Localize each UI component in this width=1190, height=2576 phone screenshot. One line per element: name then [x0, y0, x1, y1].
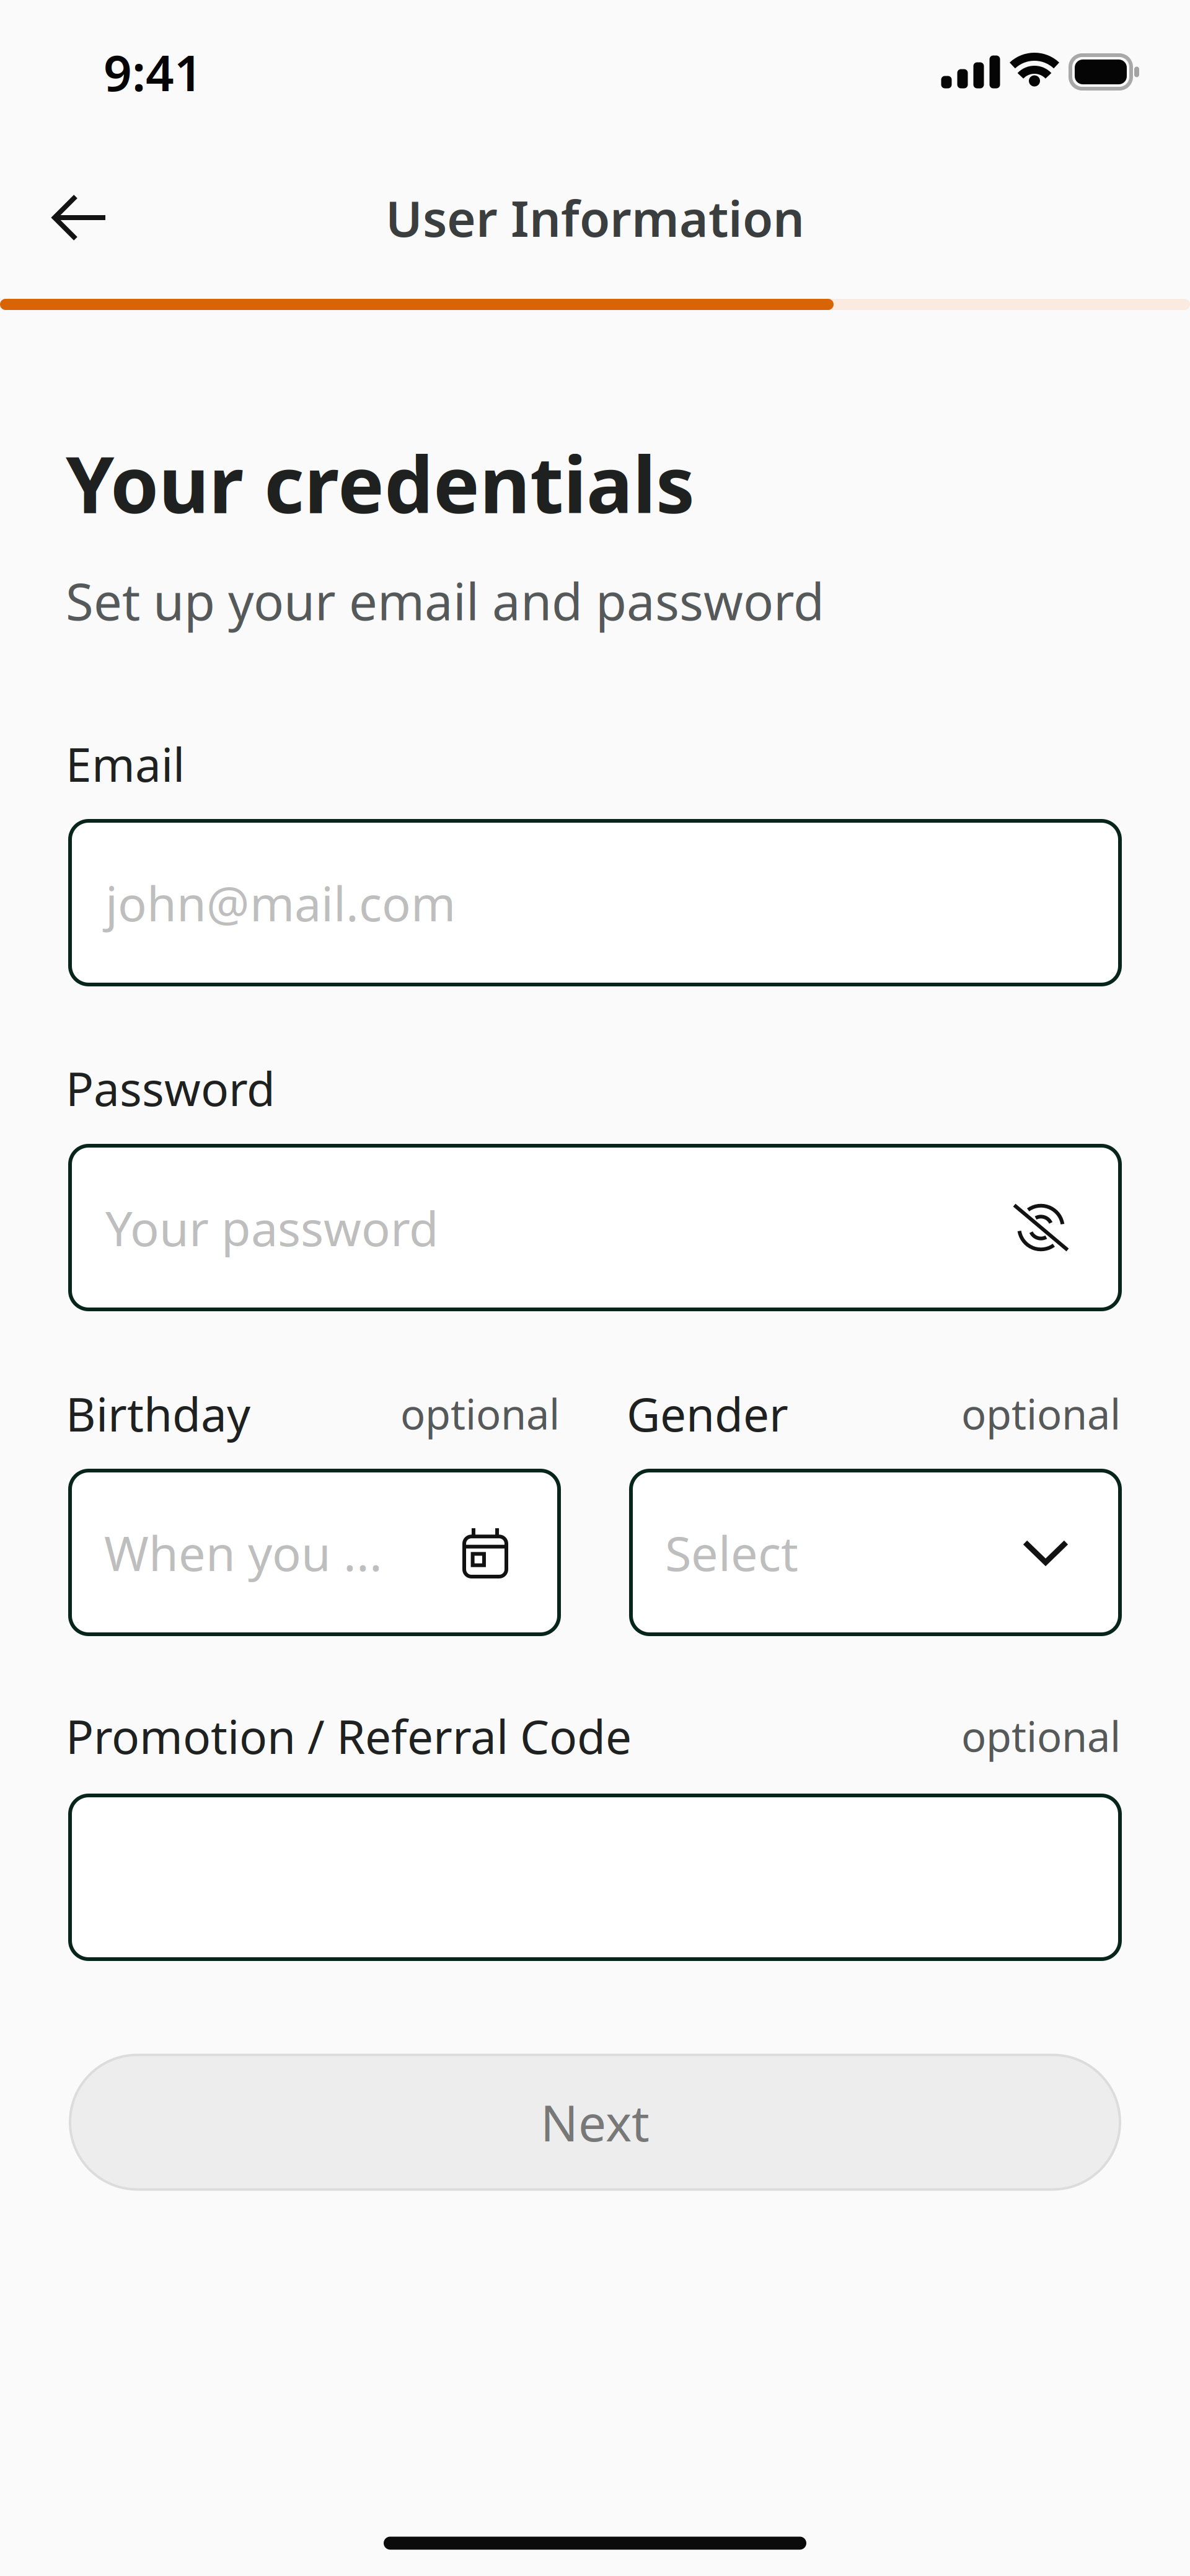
button[interactable]: Back: [37, 179, 123, 256]
staticText: Next: [540, 2089, 650, 2155]
staticText: optional: [400, 1386, 560, 1441]
button[interactable]: Next: [70, 2055, 1120, 2189]
staticText: john@mail.com: [105, 871, 456, 935]
staticText: 9:41: [104, 39, 203, 105]
staticText: optional: [961, 1708, 1121, 1763]
staticText: Your credentials: [66, 431, 695, 535]
staticText: Your password: [105, 1196, 439, 1259]
staticText: When you ...: [104, 1521, 382, 1584]
staticText: Select: [665, 1521, 798, 1584]
staticText: User Information: [386, 185, 804, 251]
staticText: optional: [961, 1386, 1121, 1441]
staticText: Promotion / Referral Code: [66, 1705, 632, 1767]
staticText: Birthday: [66, 1383, 250, 1444]
staticText: Email: [66, 733, 185, 795]
staticText: Password: [66, 1057, 275, 1119]
staticText: Set up your email and password: [66, 567, 824, 634]
staticText: Gender: [627, 1383, 788, 1444]
button[interactable]: Show password: [1010, 1201, 1072, 1254]
